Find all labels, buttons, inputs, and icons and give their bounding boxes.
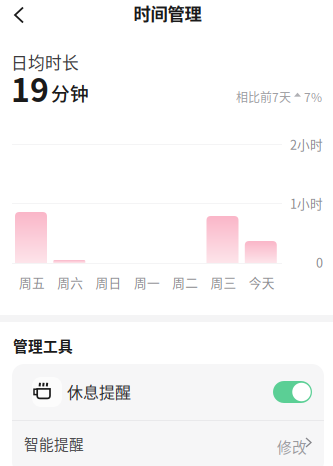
staticText: 休息提醒 <box>67 380 131 403</box>
staticText: 分钟 <box>51 79 89 106</box>
staticText: 今天 <box>249 273 275 291</box>
staticText: 周三 <box>210 273 236 291</box>
staticText: 周五 <box>19 273 45 291</box>
staticText: 日均时长 <box>11 50 79 74</box>
staticText: 时间管理 <box>133 0 201 26</box>
staticText: 1小时 <box>290 194 323 212</box>
staticText: 智能提醒 <box>24 433 84 454</box>
staticText: 相比前7天 <box>236 88 291 105</box>
staticText: 管理工具 <box>13 335 73 356</box>
staticText: 周一 <box>134 273 160 291</box>
button[interactable]: Back <box>0 0 38 30</box>
staticText: 19 <box>11 65 49 111</box>
button[interactable]: 休息提醒 <box>12 364 324 420</box>
staticText: 7% <box>304 88 322 105</box>
staticText: 2小时 <box>290 135 323 153</box>
button[interactable]: 智能提醒 <box>12 421 324 466</box>
staticText: 修改 <box>277 436 307 457</box>
staticText: 周日 <box>96 273 122 291</box>
staticText: 0 <box>316 253 323 271</box>
staticText: 周六 <box>57 273 83 291</box>
staticText: 周二 <box>172 273 198 291</box>
